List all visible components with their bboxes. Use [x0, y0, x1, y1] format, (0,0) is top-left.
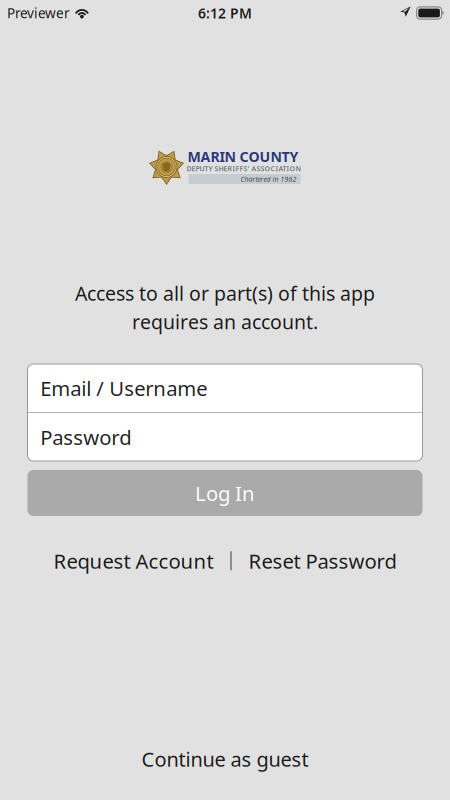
staticText: Log In — [195, 479, 255, 507]
button[interactable]: Log In — [27, 470, 422, 516]
staticText: MARIN COUNTY — [187, 147, 298, 166]
staticText: Email / Username — [40, 374, 207, 402]
button[interactable]: Reset Password — [249, 544, 397, 578]
staticText: Access to all or part(s) of this app — [75, 280, 375, 306]
staticText: Chartered in 1962 — [240, 174, 296, 184]
button[interactable]: Password — [27, 413, 422, 461]
staticText: DEPUTY SHERIFFS' ASSOCIATION — [186, 164, 301, 173]
staticText: Reset Password — [249, 547, 397, 575]
staticText: Continue as guest — [141, 745, 308, 773]
button[interactable]: Request Account — [53, 544, 213, 578]
button[interactable]: Continue as guest — [95, 739, 355, 779]
staticText: requires an account. — [132, 308, 318, 335]
staticText: 6:12 PM — [198, 4, 252, 22]
staticText: Request Account — [53, 547, 213, 575]
button[interactable]: Email / Username — [27, 364, 422, 412]
staticText: Previewer — [7, 4, 70, 22]
staticText: Password — [40, 423, 131, 451]
